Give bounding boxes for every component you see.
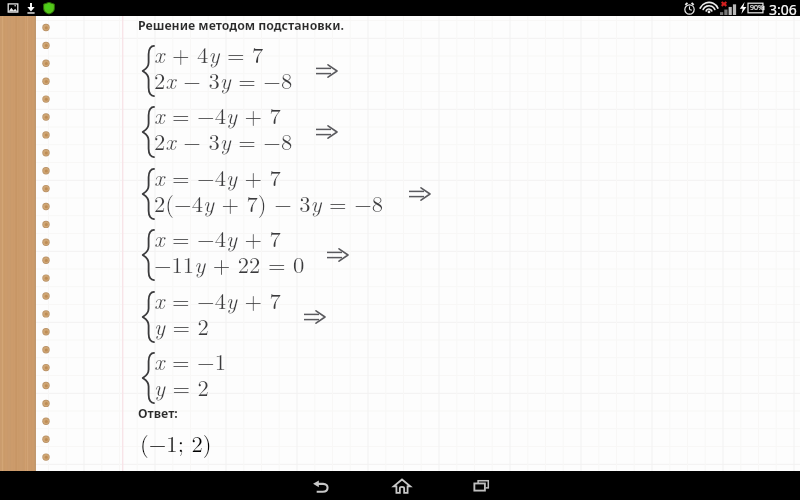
staticText: x = −1 [154,345,226,377]
staticText: x = −4y + 7 [154,99,281,131]
staticText: 3:06 [769,0,797,16]
staticText: x = −4y + 7 [154,161,281,193]
staticText: x = −4y + 7 [154,222,281,254]
button[interactable]: Recent apps [451,471,511,500]
staticText: (−1; 2) [140,427,212,459]
staticText: 2x − 3y = −8 [154,125,293,157]
button[interactable]: Back [291,471,351,500]
staticText: x = −4y + 7 [154,284,281,316]
staticText: Ответ: [138,405,178,422]
staticText: x + 4y = 7 [154,38,264,70]
staticText: y = 2 [154,371,209,403]
staticText: −11y + 22 = 0 [154,248,305,280]
staticText: 2(−4y + 7) − 3y = −8 [154,187,384,219]
staticText: 2x − 3y = −8 [154,64,293,96]
button[interactable]: Home [372,471,432,500]
staticText: Решение методом подстановки. [138,17,344,34]
staticText: y = 2 [154,310,209,342]
staticText: 90% [750,3,764,13]
